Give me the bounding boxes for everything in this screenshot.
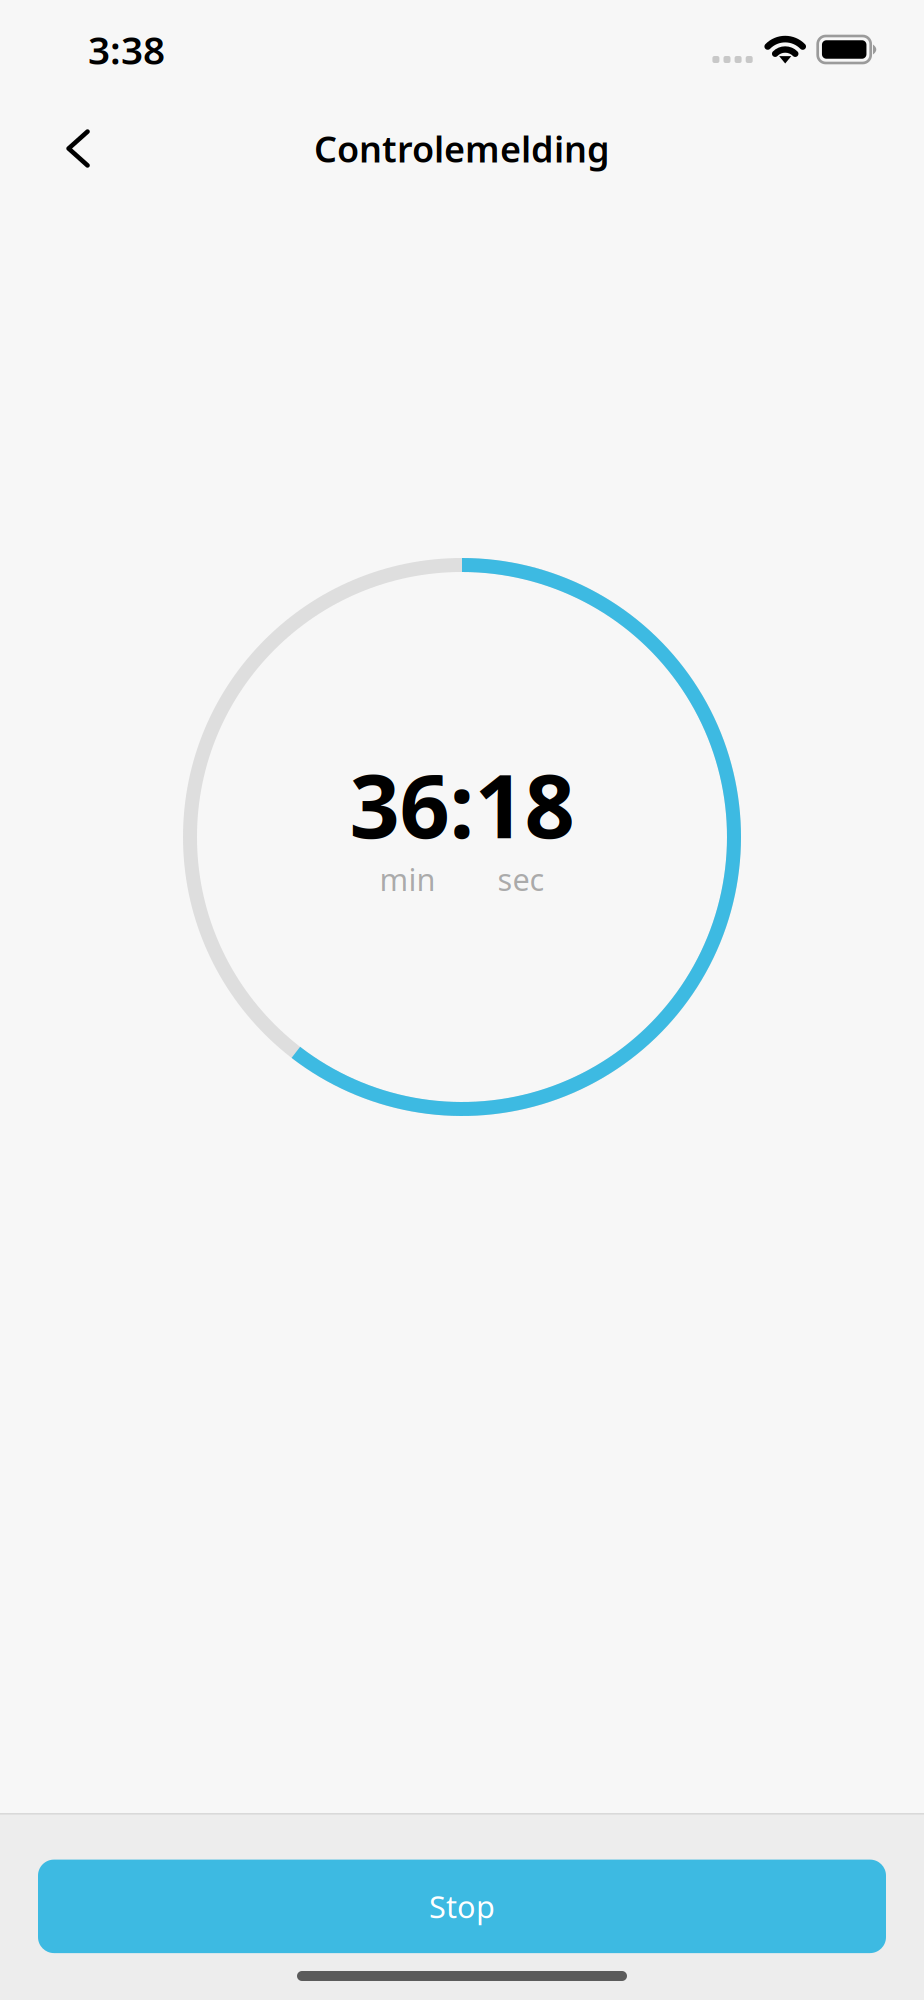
staticText: min bbox=[379, 859, 435, 899]
staticText: Stop bbox=[429, 1886, 495, 1927]
staticText: Controlemelding bbox=[314, 125, 610, 172]
staticText: 36:18 bbox=[349, 746, 574, 862]
button[interactable]: Back bbox=[46, 113, 110, 184]
staticText: 3:38 bbox=[88, 24, 165, 75]
staticText: sec bbox=[497, 859, 544, 899]
button[interactable]: Stop bbox=[38, 1860, 886, 1953]
